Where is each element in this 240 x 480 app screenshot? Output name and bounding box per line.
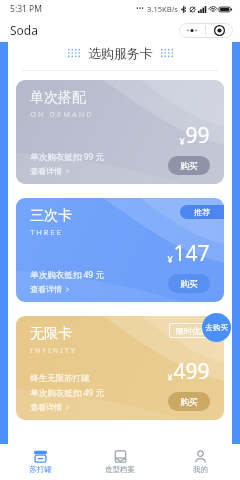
- staticText: 单次搭配: [30, 89, 86, 107]
- button[interactable]: 单次搭配: [16, 80, 224, 184]
- button[interactable]: 我的: [160, 444, 240, 480]
- staticText: T H R E E: [30, 227, 61, 237]
- button[interactable]: 推荐: [16, 198, 224, 302]
- button[interactable]: 苏打罐: [0, 444, 80, 480]
- button[interactable]: 购买: [168, 392, 210, 411]
- staticText: 单次购衣抵扣 49 元: [30, 269, 104, 281]
- staticText: ¥: [167, 371, 173, 383]
- staticText: O N D E M A N D: [30, 109, 92, 119]
- staticText: 无限卡: [30, 325, 72, 343]
- staticText: 终生无限苏打罐: [30, 373, 90, 384]
- button[interactable]: 查看详情: [30, 166, 70, 176]
- staticText: Soda: [10, 22, 38, 38]
- button[interactable]: 限时优惠: [16, 316, 224, 420]
- staticText: 3.15KB/s: [147, 4, 178, 14]
- staticText: 单次购衣抵扣 99 元: [30, 151, 104, 163]
- staticText: 购买: [180, 278, 198, 289]
- staticText: 购买: [180, 160, 198, 171]
- staticText: 限时优惠: [176, 326, 208, 336]
- staticText: 499: [173, 357, 210, 386]
- button[interactable]: 购买: [168, 274, 210, 293]
- staticText: 查看详情: [30, 166, 62, 176]
- staticText: 三次卡: [30, 207, 72, 225]
- staticText: 购买: [180, 396, 198, 407]
- staticText: 单次购衣抵扣 49 元: [30, 387, 104, 399]
- staticText: 我的: [193, 465, 208, 474]
- staticText: ¥: [167, 253, 173, 265]
- staticText: I N F I N I T Y: [30, 345, 75, 355]
- button[interactable]: Target: [206, 23, 233, 38]
- button[interactable]: More: [179, 23, 205, 38]
- staticText: 推荐: [194, 207, 210, 217]
- staticText: 苏打罐: [29, 465, 52, 474]
- staticText: 选购服务卡: [88, 45, 153, 61]
- staticText: •••: [136, 4, 144, 14]
- staticText: 147: [173, 239, 210, 268]
- staticText: 5:31 PM: [10, 3, 42, 15]
- staticText: 去购买: [205, 323, 228, 332]
- button[interactable]: 购买: [168, 156, 210, 175]
- staticText: 99: [185, 121, 210, 150]
- button[interactable]: 查看详情: [30, 284, 70, 294]
- staticText: ¥: [179, 135, 185, 147]
- button[interactable]: 限时优惠: [169, 323, 215, 338]
- staticText: 查看详情: [30, 284, 62, 294]
- button[interactable]: 造型档案: [80, 444, 160, 480]
- staticText: 造型档案: [105, 465, 135, 474]
- button[interactable]: 去购买: [202, 313, 231, 342]
- staticText: 查看详情: [30, 402, 62, 412]
- button[interactable]: 查看详情: [30, 402, 70, 412]
- button[interactable]: 推荐: [180, 205, 224, 219]
